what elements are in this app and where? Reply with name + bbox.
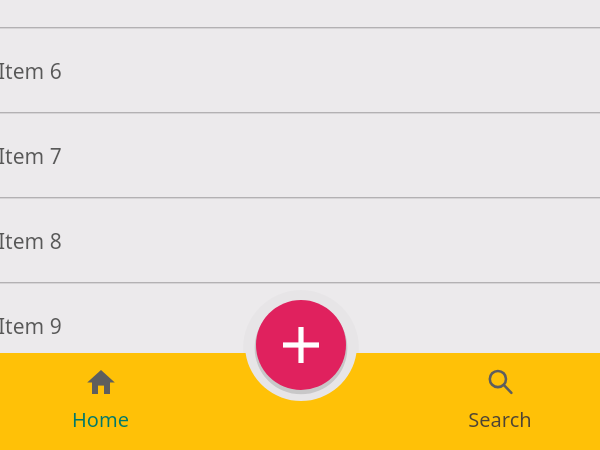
button[interactable]: Search [440, 361, 560, 450]
staticText: Item 9 [0, 312, 62, 341]
button[interactable]: Item 7 [0, 132, 598, 180]
button[interactable]: Item 8 [0, 217, 598, 265]
staticText: Search [468, 406, 532, 433]
staticText: Item 8 [0, 227, 62, 256]
other: Search [485, 367, 515, 397]
staticText: Item 7 [0, 142, 62, 171]
staticText: Home [72, 406, 129, 433]
other: Home [86, 367, 116, 397]
button[interactable]: Item 9 [0, 302, 598, 350]
staticText: Item 6 [0, 57, 62, 86]
button[interactable]: Add [256, 300, 346, 390]
button[interactable]: Item 6 [0, 47, 598, 95]
button[interactable]: Home [40, 361, 160, 450]
